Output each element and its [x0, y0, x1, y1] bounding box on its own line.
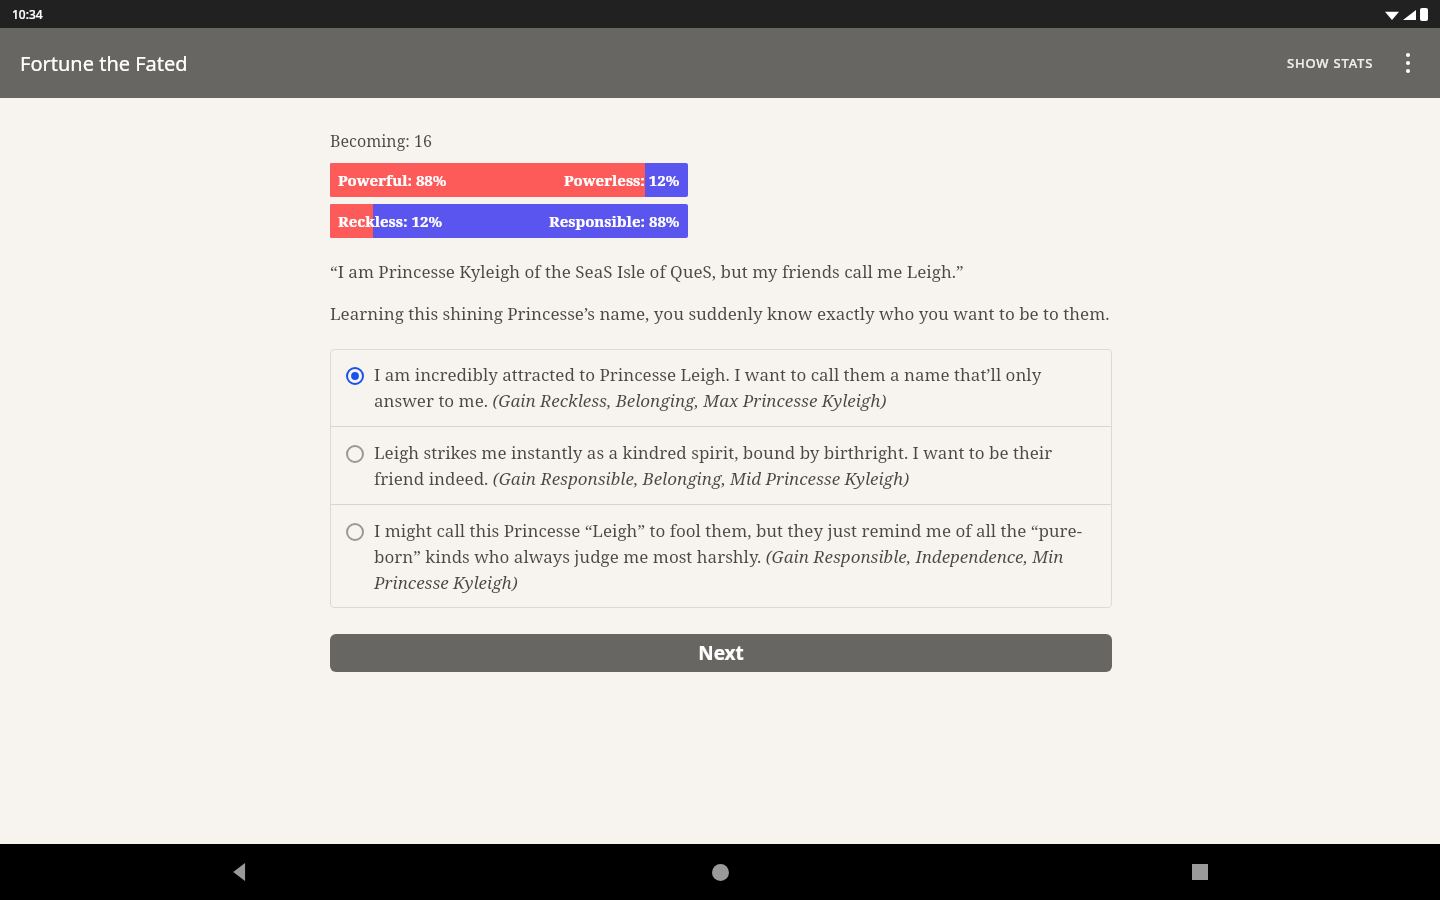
staticText: Next: [698, 640, 744, 666]
staticText: Reckless: 12%: [338, 211, 443, 231]
button[interactable]: SHOW STATS: [1277, 40, 1384, 86]
staticText: Learning this shining Princesse’s name, …: [330, 302, 1110, 325]
staticText: Becoming: 16: [330, 130, 432, 152]
staticText: Powerful: 88%: [338, 170, 447, 190]
button[interactable]: Recents: [960, 844, 1440, 900]
button[interactable]: More options: [1384, 39, 1432, 87]
button[interactable]: Leigh strikes me instantly as a kindred …: [330, 427, 1112, 504]
staticText: “I am Princesse Kyleigh of the SeaS Isle…: [330, 260, 964, 283]
staticText: 10:34: [12, 6, 43, 22]
staticText: Responsible: 88%: [549, 211, 680, 231]
staticText: Powerless: 12%: [564, 170, 680, 190]
staticText: SHOW STATS: [1287, 54, 1374, 72]
button[interactable]: Home: [480, 844, 960, 900]
staticText: Leigh strikes me instantly as a kindred …: [374, 441, 1094, 490]
button[interactable]: I am incredibly attracted to Princesse L…: [330, 349, 1112, 426]
button[interactable]: Back: [0, 844, 480, 900]
button[interactable]: Next: [330, 634, 1112, 672]
staticText: Fortune the Fated: [20, 50, 188, 77]
button[interactable]: I might call this Princesse “Leigh” to f…: [330, 505, 1112, 608]
staticText: I am incredibly attracted to Princesse L…: [374, 363, 1094, 412]
staticText: I might call this Princesse “Leigh” to f…: [374, 519, 1094, 594]
